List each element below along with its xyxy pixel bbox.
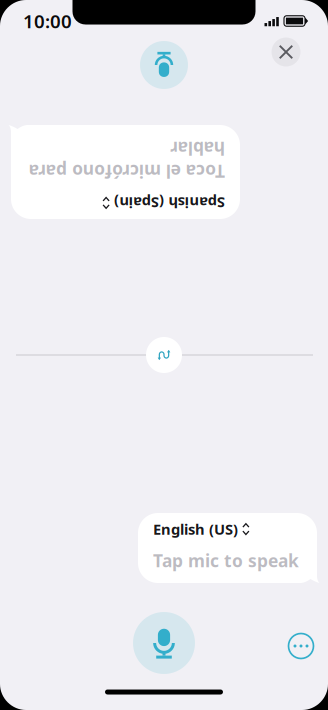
- staticText: Toca el micrófono para hablar: [26, 161, 222, 207]
- staticText: 10:00: [23, 9, 72, 33]
- staticText: Tap mic to speak: [153, 549, 299, 572]
- button[interactable]: Swap languages: [140, 331, 188, 379]
- staticText: English (US): [153, 519, 238, 539]
- button[interactable]: More options: [283, 628, 319, 664]
- button[interactable]: Close: [269, 35, 303, 69]
- button[interactable]: Tap to speak: [129, 608, 199, 678]
